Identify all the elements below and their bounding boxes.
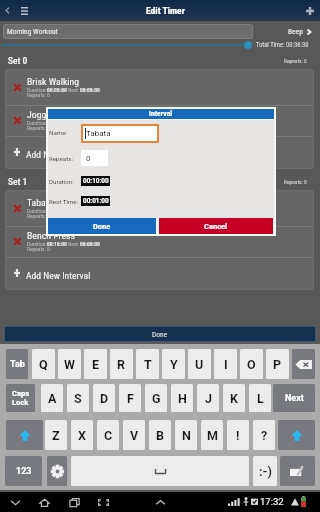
button[interactable]: P bbox=[266, 349, 289, 379]
staticText: Jogging bbox=[27, 109, 59, 120]
button[interactable]: N bbox=[175, 420, 197, 450]
staticText: D bbox=[100, 391, 109, 406]
staticText: E bbox=[92, 357, 100, 372]
staticText: Duration: bbox=[27, 208, 47, 214]
button[interactable]: Tabata bbox=[5, 190, 314, 226]
button[interactable]: I bbox=[214, 349, 237, 379]
staticText: Repeats: 0 bbox=[284, 179, 307, 185]
staticText: K bbox=[230, 391, 238, 406]
button[interactable]: K bbox=[223, 384, 245, 412]
button[interactable]: D bbox=[93, 384, 115, 412]
button[interactable]: O bbox=[240, 349, 263, 379]
button[interactable]: Next bbox=[273, 384, 315, 412]
staticText: Beep bbox=[288, 27, 303, 36]
button[interactable]: C bbox=[97, 420, 119, 450]
button[interactable]: X bbox=[71, 420, 93, 450]
button[interactable]: Back bbox=[0, 0, 14, 21]
button[interactable]: Done bbox=[48, 218, 156, 234]
staticText: Set 0 bbox=[8, 55, 28, 66]
button[interactable]: F bbox=[119, 384, 141, 412]
staticText: 00:01:00 bbox=[83, 197, 109, 205]
button[interactable]: Screenshot bbox=[92, 492, 114, 512]
button[interactable]: Brisk Walking bbox=[5, 69, 314, 105]
button[interactable]: L bbox=[249, 384, 271, 412]
staticText: Rest: bbox=[67, 87, 80, 93]
button[interactable]: shiftR bbox=[278, 420, 315, 450]
button[interactable]: Z bbox=[45, 420, 67, 450]
button[interactable]: W bbox=[58, 349, 81, 379]
button[interactable]: Back bbox=[4, 492, 26, 512]
staticText: Repeats: 0 bbox=[27, 213, 50, 219]
button[interactable]: Done bbox=[4, 326, 316, 342]
staticText: A bbox=[48, 391, 57, 406]
staticText: Brisk Walking bbox=[27, 76, 80, 87]
button[interactable]: Add New Interval bbox=[5, 257, 314, 290]
button[interactable]: V bbox=[123, 420, 145, 450]
button[interactable]: H bbox=[171, 384, 193, 412]
staticText: Y bbox=[170, 357, 178, 372]
button[interactable]: Add New Interval bbox=[5, 136, 314, 169]
button[interactable]: Tabata bbox=[81, 124, 159, 143]
staticText: 17:32 bbox=[260, 496, 284, 507]
staticText: 00:05:00 bbox=[47, 87, 67, 93]
button[interactable]: Hide keyboard bbox=[149, 492, 171, 512]
staticText: V bbox=[130, 428, 139, 443]
button[interactable]: U bbox=[188, 349, 211, 379]
staticText: W bbox=[64, 357, 75, 372]
button[interactable]: Recents bbox=[63, 492, 85, 512]
button[interactable]: ? bbox=[253, 420, 275, 450]
staticText: F bbox=[127, 391, 134, 406]
button[interactable]: Beep bbox=[253, 24, 317, 39]
staticText: Duration: bbox=[49, 178, 74, 185]
staticText: Duration: bbox=[27, 87, 47, 93]
button[interactable]: ! bbox=[227, 420, 249, 450]
button[interactable]: <x bbox=[292, 349, 315, 379]
button[interactable]: Caps Lock bbox=[6, 384, 35, 412]
button[interactable]: G bbox=[145, 384, 167, 412]
button[interactable]: R bbox=[110, 349, 133, 379]
button[interactable]: B bbox=[149, 420, 171, 450]
button[interactable]: shiftL bbox=[6, 420, 43, 450]
staticText: M bbox=[207, 428, 218, 443]
button[interactable]: 0 bbox=[81, 150, 108, 166]
button[interactable]: space bbox=[71, 456, 249, 486]
staticText: 00:00:00 bbox=[80, 241, 100, 247]
button[interactable]: A bbox=[41, 384, 63, 412]
staticText: Done bbox=[152, 330, 168, 339]
button[interactable]: Tab bbox=[6, 349, 28, 379]
button[interactable]: Home bbox=[33, 492, 55, 512]
staticText: Z bbox=[52, 428, 60, 443]
button[interactable]: E bbox=[84, 349, 107, 379]
staticText: Lock bbox=[12, 398, 29, 407]
button[interactable]: gear bbox=[47, 456, 67, 486]
staticText: B bbox=[156, 428, 164, 443]
button[interactable]: Bench Press bbox=[5, 226, 314, 257]
staticText: Done bbox=[93, 222, 111, 231]
button[interactable]: 00:01:00 bbox=[81, 196, 110, 206]
staticText: Interval bbox=[149, 110, 173, 118]
staticText: H bbox=[178, 391, 187, 406]
button[interactable]: Morning Workout bbox=[3, 24, 253, 39]
staticText: Repeats: 0 bbox=[284, 58, 307, 64]
button[interactable]: T bbox=[136, 349, 159, 379]
button[interactable]: J bbox=[197, 384, 219, 412]
button[interactable]: Jogging bbox=[5, 105, 314, 136]
staticText: 00:10:00 bbox=[47, 120, 67, 126]
staticText: O bbox=[247, 357, 256, 372]
button[interactable]: 123 bbox=[5, 456, 42, 486]
button[interactable]: S bbox=[67, 384, 89, 412]
button[interactable]: Q bbox=[32, 349, 55, 379]
button[interactable]: :-) bbox=[253, 456, 277, 486]
button[interactable]: Menu bbox=[16, 0, 32, 21]
button[interactable]: Cancel bbox=[159, 218, 273, 234]
button[interactable]: M bbox=[201, 420, 223, 450]
button[interactable]: Add bbox=[300, 0, 320, 21]
staticText: P bbox=[273, 357, 282, 372]
staticText: Cancel bbox=[204, 222, 228, 231]
button[interactable]: Y bbox=[162, 349, 185, 379]
staticText: Tabata bbox=[27, 197, 54, 208]
button[interactable]: clip bbox=[280, 456, 315, 486]
staticText: X bbox=[78, 428, 86, 443]
button[interactable]: 00:10:00 bbox=[81, 176, 110, 186]
